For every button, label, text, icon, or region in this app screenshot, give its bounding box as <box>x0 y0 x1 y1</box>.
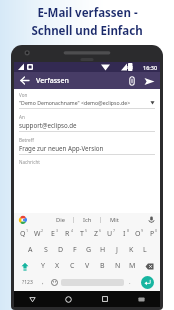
button[interactable]: S <box>38 242 53 258</box>
button[interactable]: P <box>145 226 159 242</box>
button[interactable]: H <box>96 242 110 258</box>
button[interactable]: K <box>124 242 138 258</box>
staticText: support@eclipso.de <box>19 121 77 129</box>
staticText: X <box>55 261 60 271</box>
staticText: T <box>80 229 84 239</box>
staticText: 9 <box>141 228 144 233</box>
staticText: B <box>100 261 105 271</box>
button[interactable]: Startbildschirm <box>50 291 86 307</box>
button[interactable]: Mit <box>101 214 127 226</box>
button[interactable]: , <box>38 274 48 290</box>
staticText: P <box>150 229 155 239</box>
staticText: 7 <box>113 228 116 233</box>
staticText: J <box>116 245 118 255</box>
button[interactable]: Löschen <box>140 258 159 274</box>
staticText: Von <box>19 92 28 98</box>
staticText: 2 <box>41 228 44 233</box>
staticText: Mit <box>110 216 119 224</box>
staticText: E-Mail verfassen - <box>37 5 138 21</box>
staticText: O <box>135 229 141 239</box>
button[interactable]: Emoji <box>48 274 61 290</box>
button[interactable]: Z <box>89 226 103 242</box>
button[interactable]: L <box>138 242 152 258</box>
staticText: R <box>65 229 70 239</box>
button[interactable]: Spracheingabe <box>147 215 156 224</box>
staticText: N <box>115 261 121 271</box>
button[interactable]: Übersicht <box>86 291 123 307</box>
button[interactable]: I <box>117 226 131 242</box>
button[interactable]: ?123 <box>16 274 38 290</box>
staticText: LTE <box>127 65 134 70</box>
staticText: U <box>107 229 113 239</box>
button[interactable]: G <box>82 242 96 258</box>
staticText: 1 <box>26 228 29 233</box>
button[interactable]: E <box>45 226 60 242</box>
button[interactable]: T <box>75 226 89 242</box>
button[interactable]: Y <box>35 258 50 274</box>
staticText: 6 <box>99 228 102 233</box>
button[interactable]: D <box>53 242 68 258</box>
button[interactable]: O <box>131 226 145 242</box>
button[interactable]: N <box>110 258 125 274</box>
button[interactable]: Google <box>18 215 27 224</box>
button[interactable]: Frage zur neuen App-Version <box>19 144 155 152</box>
staticText: V <box>85 261 90 271</box>
button[interactable]: M <box>125 258 140 274</box>
staticText: E <box>51 229 55 239</box>
button[interactable]: Zurück <box>14 291 50 307</box>
button[interactable]: Senden <box>142 74 156 88</box>
staticText: 16:30 <box>143 64 158 71</box>
staticText: H <box>100 245 106 255</box>
staticText: Nachricht <box>19 159 40 165</box>
staticText: Betreff <box>19 137 34 143</box>
staticText: L <box>143 245 147 255</box>
staticText: 3 <box>56 228 59 233</box>
staticText: An <box>19 114 25 120</box>
staticText: M <box>129 261 136 271</box>
staticText: 8 <box>127 228 130 233</box>
button[interactable]: Die <box>47 214 73 226</box>
staticText: I <box>123 229 126 239</box>
staticText: 4 <box>71 228 74 233</box>
staticText: F <box>73 245 77 255</box>
staticText: "Demo Demonachname" <demo@eclipso.de> <box>19 99 131 106</box>
button[interactable]: V <box>80 258 95 274</box>
button[interactable]: Anhang hinzufügen <box>125 74 139 88</box>
button[interactable]: Ich <box>74 214 100 226</box>
button[interactable]: support@eclipso.de <box>19 121 155 129</box>
staticText: Schnell und Einfach <box>31 23 143 39</box>
button[interactable]: U <box>103 226 117 242</box>
button[interactable]: Umschalttaste <box>15 258 35 274</box>
staticText: A <box>28 245 33 255</box>
staticText: Ich <box>83 216 92 224</box>
staticText: S <box>44 245 48 255</box>
staticText: 0 <box>155 228 158 233</box>
button[interactable]: B <box>95 258 110 274</box>
button[interactable]: R <box>60 226 75 242</box>
staticText: D <box>58 245 64 255</box>
staticText: Frage zur neuen App-Version <box>19 144 104 152</box>
button[interactable]: . <box>124 274 136 290</box>
staticText: G <box>86 245 92 255</box>
staticText: Verfassen <box>36 76 69 86</box>
button[interactable]: C <box>65 258 80 274</box>
staticText: , <box>42 278 44 286</box>
button[interactable]: F <box>68 242 82 258</box>
button[interactable]: "Demo Demonachname" <demo@eclipso.de> <box>19 99 155 106</box>
button[interactable]: W <box>30 226 45 242</box>
staticText: W <box>34 229 41 239</box>
button[interactable]: A <box>23 242 38 258</box>
button[interactable]: X <box>50 258 65 274</box>
button[interactable]: Zurück <box>18 74 31 87</box>
button[interactable]: Eingabe <box>141 276 154 289</box>
staticText: Y <box>41 261 45 271</box>
staticText: 5 <box>85 228 88 233</box>
staticText: Q <box>20 229 26 239</box>
button[interactable]: J <box>110 242 124 258</box>
button[interactable]: Q <box>15 226 30 242</box>
staticText: K <box>129 245 134 255</box>
button[interactable]: Tastatur ausblenden <box>123 291 160 307</box>
staticText: . <box>129 278 131 286</box>
staticText: ?123 <box>22 279 33 286</box>
